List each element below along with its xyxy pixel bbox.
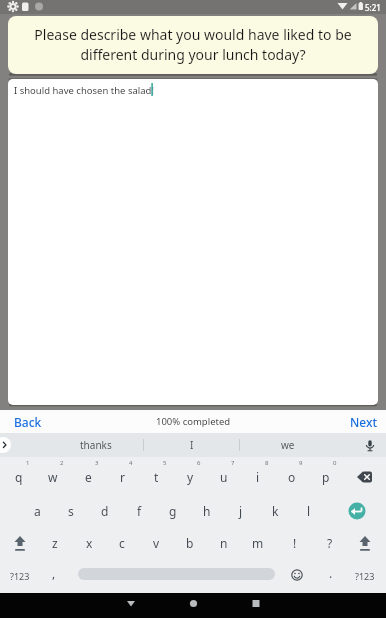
staticText: w <box>48 469 58 485</box>
staticText: u <box>220 469 228 485</box>
staticText: . <box>329 565 333 581</box>
button[interactable]: l <box>292 495 326 527</box>
button[interactable]: ! <box>278 527 312 559</box>
staticText: k <box>272 503 279 519</box>
button[interactable]: q <box>2 461 36 493</box>
button[interactable]: r <box>105 461 139 493</box>
button[interactable]: Next <box>342 412 386 432</box>
staticText: 0 <box>333 459 337 467</box>
button[interactable]: h <box>190 495 224 527</box>
staticText: f <box>137 503 142 519</box>
button[interactable]: Back <box>8 412 58 432</box>
button[interactable]: v <box>139 527 173 559</box>
staticText: j <box>239 503 243 519</box>
staticText: b <box>186 535 194 551</box>
button[interactable]: , <box>37 557 71 589</box>
staticText: y <box>187 469 194 485</box>
button[interactable]: p <box>309 461 343 493</box>
button[interactable]: thanks <box>48 433 143 457</box>
button[interactable]: g <box>156 495 190 527</box>
button[interactable]: n <box>207 527 241 559</box>
staticText: Back <box>14 414 42 430</box>
button[interactable]: ? <box>313 527 347 559</box>
staticText: we <box>281 438 295 452</box>
staticText: i <box>256 469 260 485</box>
button[interactable]: m <box>241 527 275 559</box>
button[interactable]: e <box>71 461 105 493</box>
button[interactable]: x <box>72 527 106 559</box>
staticText: 7 <box>231 459 235 467</box>
staticText: 2 <box>60 459 64 467</box>
button[interactable]: i <box>241 461 275 493</box>
staticText: h <box>203 503 211 519</box>
button[interactable]: I <box>144 433 239 457</box>
staticText: 5:21 <box>365 2 381 13</box>
button[interactable]: d <box>88 495 122 527</box>
button[interactable]: u <box>207 461 241 493</box>
staticText: s <box>68 503 74 519</box>
staticText: d <box>101 503 109 519</box>
staticText: 1 <box>26 459 30 467</box>
staticText: t <box>154 469 159 485</box>
staticText: r <box>120 469 125 485</box>
button[interactable]: I should have chosen the salad! <box>8 79 378 405</box>
staticText: 5 <box>163 459 167 467</box>
staticText: e <box>85 469 92 485</box>
button[interactable] <box>177 593 209 618</box>
button[interactable]: k <box>258 495 292 527</box>
staticText: x <box>86 535 93 551</box>
staticText: a <box>34 503 41 519</box>
staticText: q <box>15 469 23 485</box>
button[interactable]: f <box>122 495 156 527</box>
button[interactable]: w <box>36 461 70 493</box>
staticText: p <box>322 469 330 485</box>
button[interactable]: b <box>173 527 207 559</box>
staticText: 100% completed <box>156 415 231 428</box>
button[interactable]: ?123 <box>2 560 38 592</box>
staticText: 9 <box>299 459 303 467</box>
staticText: Please describe what you would have like… <box>34 25 352 64</box>
staticText: l <box>307 503 311 519</box>
button[interactable] <box>240 593 272 618</box>
staticText: 6 <box>197 459 201 467</box>
staticText: I should have chosen the salad! <box>14 84 154 97</box>
staticText: ! <box>293 535 297 551</box>
staticText: n <box>220 535 228 551</box>
button[interactable]: . <box>314 557 348 589</box>
staticText: 8 <box>265 459 269 467</box>
button[interactable]: j <box>224 495 258 527</box>
staticText: 4 <box>129 459 133 467</box>
button[interactable]: Please describe what you would have like… <box>8 16 378 74</box>
button[interactable]: ?123 <box>347 560 383 592</box>
staticText: m <box>252 535 264 551</box>
staticText: ?123 <box>10 570 30 582</box>
button[interactable]: z <box>38 527 72 559</box>
staticText: z <box>52 535 58 551</box>
staticText: , <box>52 565 56 581</box>
button[interactable]: o <box>275 461 309 493</box>
staticText: o <box>288 469 296 485</box>
button[interactable] <box>115 593 147 618</box>
staticText: c <box>119 535 125 551</box>
button[interactable]: s <box>54 495 88 527</box>
button[interactable]: t <box>139 461 173 493</box>
staticText: I <box>190 438 194 452</box>
staticText: thanks <box>80 438 112 452</box>
staticText: 3 <box>95 459 99 467</box>
button[interactable]: we <box>240 433 335 457</box>
button[interactable]: a <box>20 495 54 527</box>
staticText: g <box>169 503 177 519</box>
staticText: ?123 <box>355 570 375 582</box>
button[interactable]: y <box>173 461 207 493</box>
button[interactable]: c <box>105 527 139 559</box>
staticText: Next <box>350 414 378 430</box>
staticText: v <box>153 535 160 551</box>
staticText: ? <box>327 535 333 551</box>
